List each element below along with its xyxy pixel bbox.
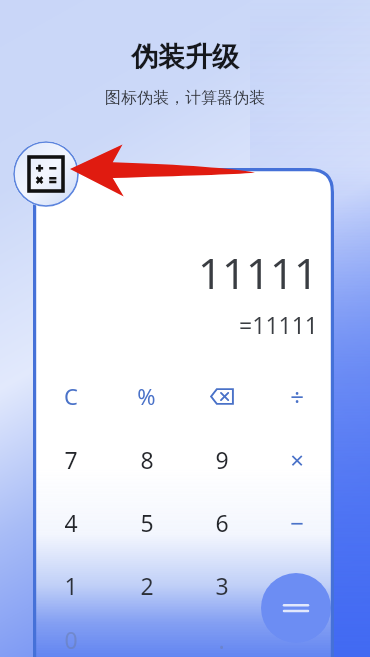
staticText: 7 <box>64 444 78 475</box>
staticText: C <box>64 381 78 411</box>
staticText: 1 <box>64 570 78 601</box>
staticText: 3 <box>215 570 229 601</box>
button[interactable]: 5 <box>109 496 184 548</box>
button[interactable]: 4 <box>33 496 109 548</box>
staticText: 4 <box>64 507 78 538</box>
staticText: ÷ <box>290 380 304 413</box>
staticText: 2 <box>140 570 154 601</box>
staticText: 伪装升级 <box>131 40 239 74</box>
staticText: 6 <box>215 507 229 538</box>
staticText: =11111 <box>239 309 318 340</box>
staticText: 9 <box>215 444 229 475</box>
staticText: 8 <box>140 444 154 475</box>
staticText: 5 <box>140 507 154 538</box>
button[interactable]: 0 <box>33 622 109 657</box>
button[interactable]: 1 <box>33 559 109 611</box>
staticText: − <box>290 506 304 539</box>
button[interactable] <box>109 622 184 657</box>
button[interactable]: 2 <box>109 559 184 611</box>
button[interactable]: Backspace <box>184 370 259 422</box>
button[interactable]: C <box>33 370 109 422</box>
button[interactable]: ÷ <box>259 370 334 422</box>
button[interactable]: Calculator disguise icon <box>13 141 79 207</box>
button[interactable]: % <box>109 370 184 422</box>
staticText: 图标伪装，计算器伪装 <box>105 88 265 108</box>
staticText: × <box>290 443 304 476</box>
button[interactable]: 6 <box>184 496 259 548</box>
button[interactable]: − <box>259 496 334 548</box>
button[interactable]: × <box>259 433 334 485</box>
button[interactable]: 9 <box>184 433 259 485</box>
button[interactable]: 3 <box>184 559 259 611</box>
button[interactable]: 7 <box>33 433 109 485</box>
button[interactable]: 8 <box>109 433 184 485</box>
staticText: . <box>218 624 225 655</box>
staticText: + <box>290 569 304 602</box>
staticText: 11111 <box>197 244 318 301</box>
button[interactable]: + <box>259 559 334 611</box>
button[interactable]: Equals <box>261 573 331 643</box>
button[interactable]: . <box>184 622 259 657</box>
staticText: % <box>137 381 156 411</box>
staticText: 0 <box>64 624 78 655</box>
